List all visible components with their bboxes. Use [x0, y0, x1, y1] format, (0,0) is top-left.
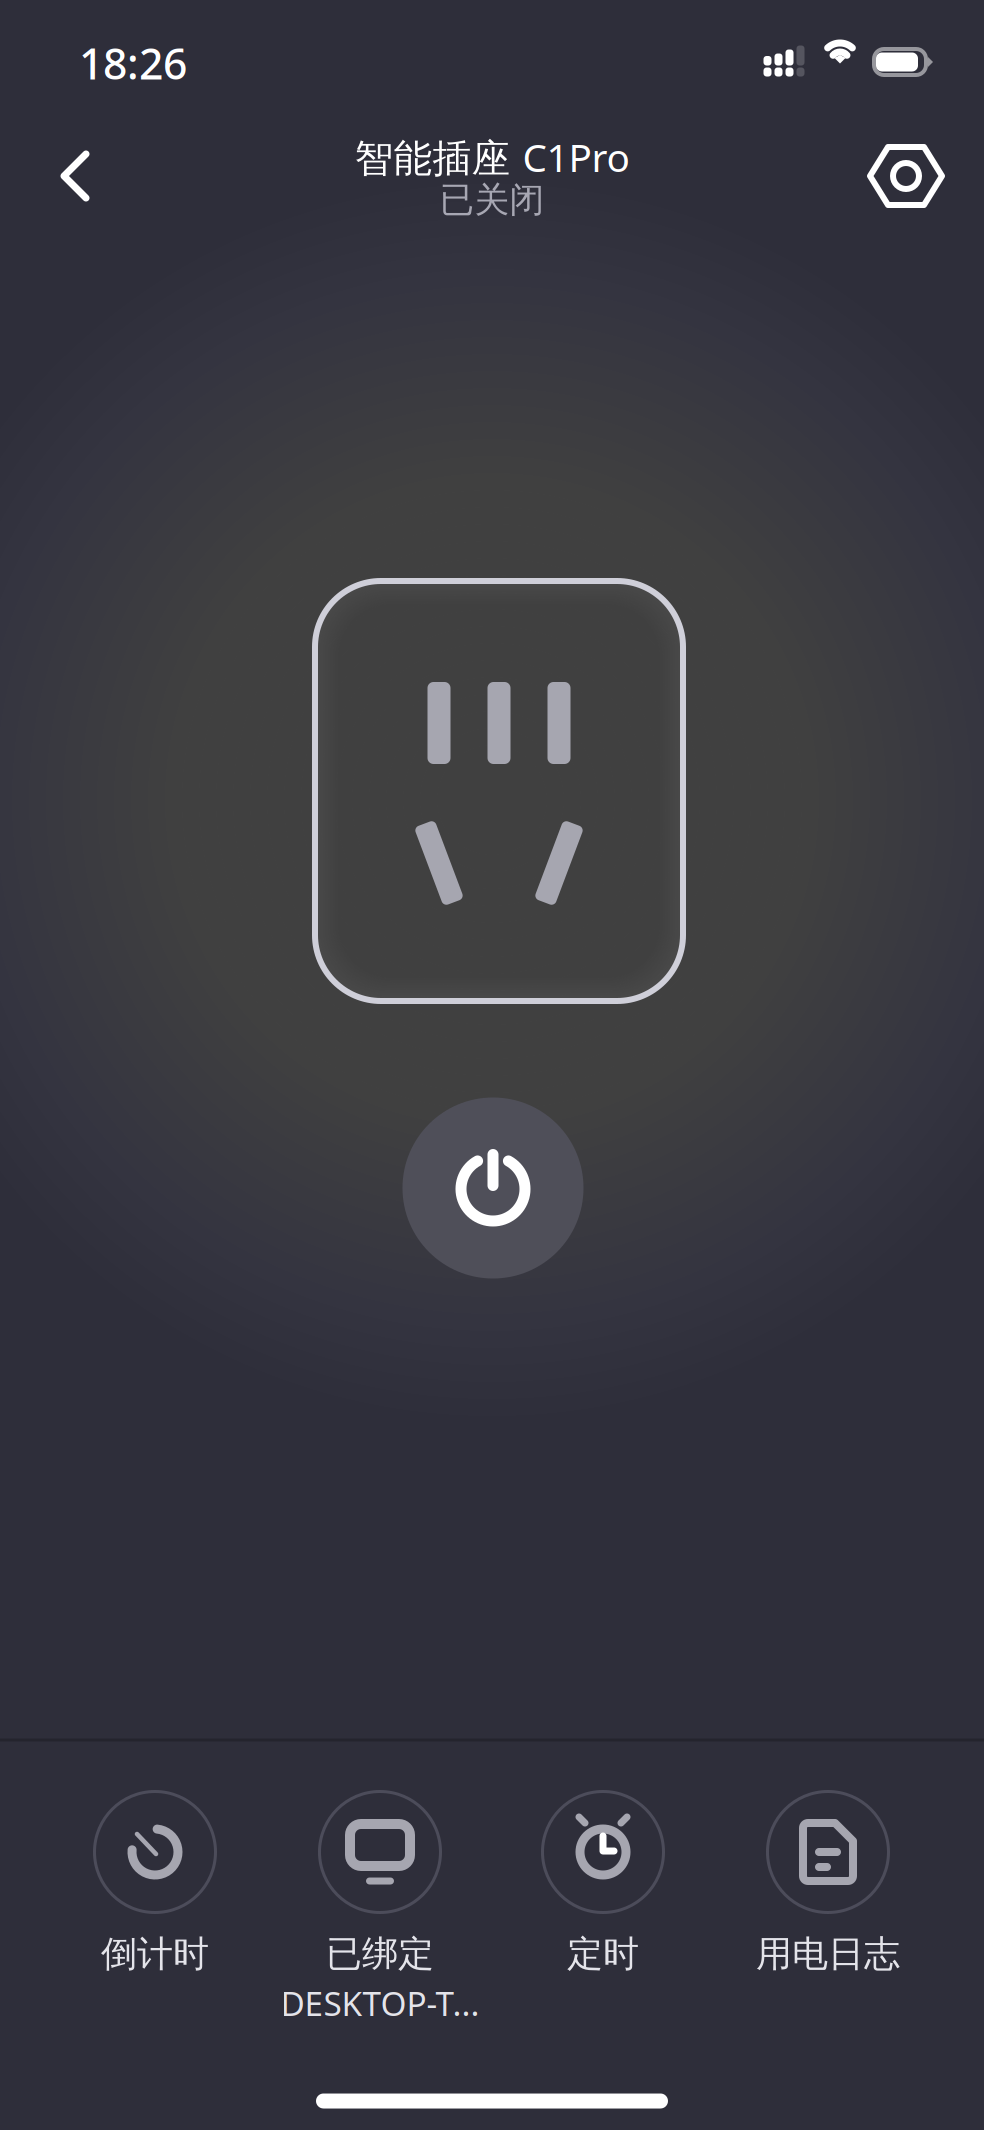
staticText: 18:26 [79, 35, 187, 91]
button[interactable]: Power on [402, 1097, 583, 1278]
staticText: 已关闭 [439, 179, 544, 221]
staticText: 智能插座 C1Pro [354, 131, 629, 183]
button[interactable]: 已绑定 [268, 1791, 492, 2061]
staticText: 定时 [567, 1932, 639, 1976]
button[interactable]: 倒计时 [43, 1791, 267, 2061]
button[interactable]: 定时 [491, 1791, 715, 2061]
staticText: DESKTOP-T... [280, 1981, 479, 2025]
staticText: 用电日志 [756, 1932, 900, 1976]
button[interactable]: 用电日志 [716, 1791, 940, 2061]
button[interactable]: Settings [866, 136, 946, 216]
staticText: 倒计时 [101, 1932, 209, 1976]
button[interactable]: Back [44, 134, 128, 218]
staticText: 已绑定 [326, 1932, 434, 1976]
